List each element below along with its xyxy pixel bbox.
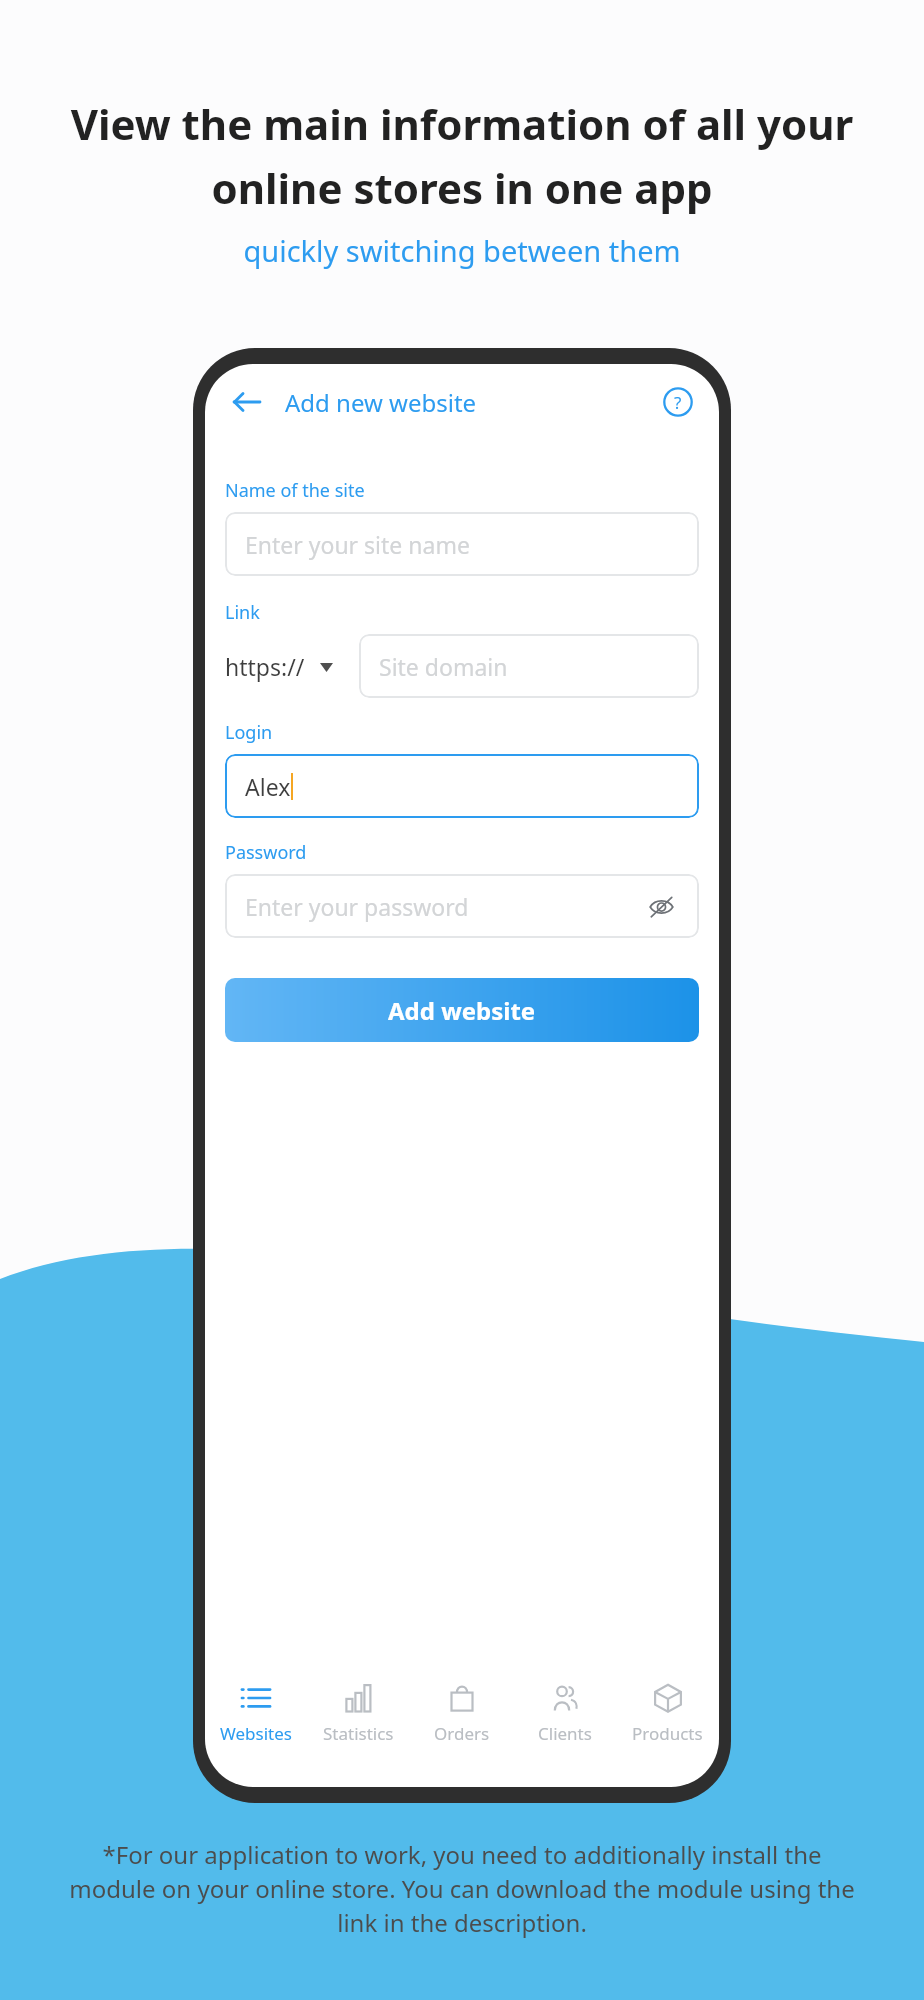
staticText: Products <box>632 1722 703 1745</box>
button[interactable]: Site domain <box>359 634 699 698</box>
button[interactable]: Statistics <box>307 1669 410 1765</box>
staticText: Enter your password <box>245 891 469 922</box>
button[interactable]: Enter your password <box>225 874 699 938</box>
button[interactable]: Show password <box>643 888 679 924</box>
staticText: Link <box>225 600 260 625</box>
button[interactable]: Help <box>657 381 699 423</box>
button[interactable]: Products <box>616 1669 719 1765</box>
staticText: Websites <box>220 1722 292 1745</box>
staticText: Statistics <box>323 1722 394 1745</box>
staticText: https:// <box>225 651 305 682</box>
staticText: Add website <box>388 994 536 1027</box>
button[interactable]: Clients <box>513 1669 616 1765</box>
button[interactable]: Websites <box>205 1669 307 1765</box>
button[interactable]: https:// <box>225 639 333 694</box>
staticText: ? <box>674 391 682 414</box>
staticText: Login <box>225 720 273 745</box>
staticText: *For our application to work, you need t… <box>58 1838 866 1939</box>
button[interactable]: Enter your site name <box>225 512 699 576</box>
staticText: Clients <box>538 1722 592 1745</box>
staticText: quickly switching between them <box>243 231 681 270</box>
staticText: Add new website <box>285 386 477 419</box>
staticText: Alex <box>245 771 291 802</box>
button[interactable]: Orders <box>410 1669 513 1765</box>
button[interactable]: Add website <box>225 978 699 1042</box>
staticText: Orders <box>434 1722 490 1745</box>
button[interactable]: Back <box>225 380 269 424</box>
staticText: Password <box>225 840 307 865</box>
staticText: Name of the site <box>225 478 365 503</box>
staticText: View the main information of all your on… <box>28 95 896 217</box>
button[interactable]: Alex <box>225 754 699 818</box>
staticText: Site domain <box>379 651 508 682</box>
staticText: Enter your site name <box>245 529 470 560</box>
